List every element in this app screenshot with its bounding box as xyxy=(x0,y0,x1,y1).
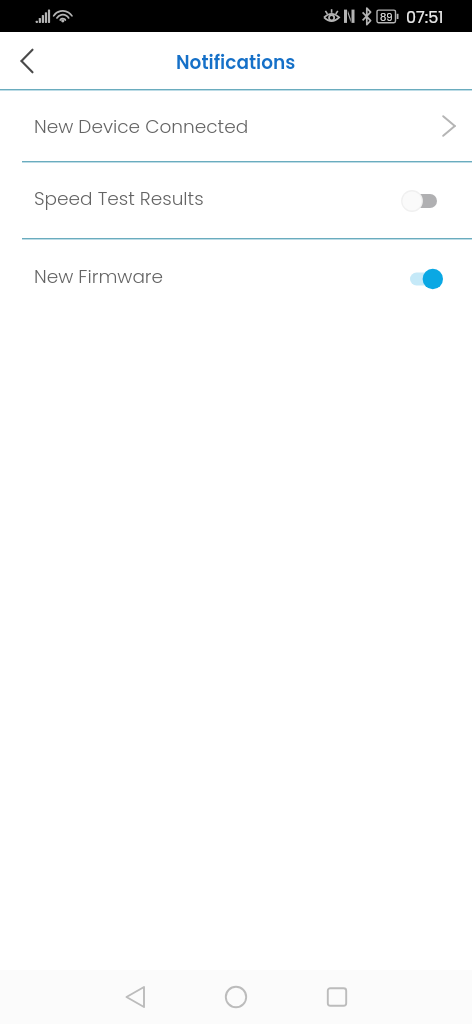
staticText: New Device Connected xyxy=(34,114,249,140)
button[interactable]: Open details xyxy=(434,111,464,141)
staticText: Speed Test Results xyxy=(34,186,204,212)
button[interactable]: Back xyxy=(0,33,56,89)
button[interactable]: Recents xyxy=(315,975,359,1019)
button[interactable]: System back xyxy=(114,975,158,1019)
staticText: 89 xyxy=(380,10,393,24)
button[interactable]: Home xyxy=(214,975,258,1019)
staticText: Notifications xyxy=(176,50,296,76)
button[interactable]: Switch off xyxy=(390,186,438,216)
button[interactable]: Switch on xyxy=(396,264,444,294)
staticText: 07:51 xyxy=(406,6,444,28)
button[interactable]: New Device Connected xyxy=(0,91,472,161)
button[interactable]: New Firmware xyxy=(0,240,472,317)
staticText: New Firmware xyxy=(34,264,164,290)
button[interactable]: Speed Test Results xyxy=(0,163,472,238)
